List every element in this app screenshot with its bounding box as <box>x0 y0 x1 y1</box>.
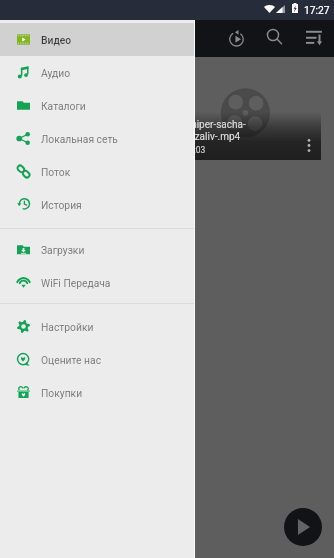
staticText: Аудио <box>41 67 71 79</box>
button[interactable]: Локальная сеть <box>0 122 195 155</box>
button[interactable]: WiFi Передача <box>0 266 195 299</box>
staticText: История <box>41 199 82 211</box>
button[interactable]: Видео <box>0 23 195 56</box>
button[interactable]: Resume playback <box>218 20 254 56</box>
button[interactable]: Загрузки <box>0 233 195 266</box>
staticText: Покупки <box>41 387 83 399</box>
staticText: WiFi Передача <box>41 277 111 289</box>
staticText: razaliv-.mp4 <box>186 131 241 143</box>
staticText: Каталоги <box>41 100 86 112</box>
button[interactable]: Search <box>256 18 292 54</box>
button[interactable]: Sort <box>295 18 331 54</box>
staticText: sniper-sacha- <box>186 119 246 131</box>
staticText: 0:03 <box>189 145 206 155</box>
staticText: Локальная сеть <box>41 133 118 145</box>
button[interactable]: Настройки <box>0 310 195 343</box>
staticText: Настройки <box>41 321 94 333</box>
staticText: Оцените нас <box>41 354 102 366</box>
staticText: 17:27 <box>304 4 330 16</box>
button[interactable]: Аудио <box>0 56 195 89</box>
button[interactable]: Поток <box>0 155 195 188</box>
button[interactable]: More options <box>297 130 321 160</box>
button[interactable]: Покупки <box>0 376 195 409</box>
staticText: Видео <box>41 34 72 46</box>
button[interactable]: sniper-sacha- <box>180 58 321 160</box>
button[interactable]: История <box>0 188 195 221</box>
button[interactable]: Каталоги <box>0 89 195 122</box>
button[interactable]: Play <box>284 508 322 546</box>
staticText: Поток <box>41 166 71 178</box>
button[interactable]: Оцените нас <box>0 343 195 376</box>
staticText: Загрузки <box>41 244 85 256</box>
